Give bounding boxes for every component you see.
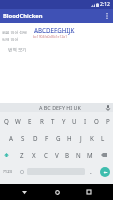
button[interactable]: Home — [41, 184, 73, 200]
staticText: 2:12 — [100, 1, 110, 8]
button[interactable]: S — [17, 129, 29, 146]
button[interactable]: Recents — [73, 184, 105, 200]
button[interactable]: R — [36, 112, 47, 129]
staticText: G — [56, 134, 61, 142]
staticText: N — [76, 151, 81, 159]
staticText: B — [65, 151, 70, 159]
button[interactable]: M — [84, 146, 95, 163]
staticText: I — [84, 117, 87, 125]
button[interactable]: Space — [27, 163, 85, 180]
button[interactable]: Voice input — [102, 103, 113, 112]
staticText: A — [9, 134, 13, 142]
button[interactable]: Emoji — [16, 163, 27, 180]
button[interactable]: T — [47, 112, 58, 129]
staticText: R — [40, 117, 44, 125]
staticText: Y — [62, 117, 66, 125]
staticText: ABCDEFGHIJK — [34, 26, 75, 34]
button[interactable]: W — [12, 112, 24, 129]
staticText: ?123 — [3, 169, 13, 175]
button[interactable]: D — [29, 129, 41, 146]
button[interactable]: Y — [58, 112, 69, 129]
staticText: D — [33, 134, 38, 142]
button[interactable]: E — [24, 112, 36, 129]
button[interactable]: B — [62, 146, 73, 163]
staticText: BloodChicken — [3, 12, 43, 20]
staticText: bc1904fa0d3b1e12a1 — [33, 34, 68, 39]
button[interactable]: V — [51, 146, 62, 163]
staticText: U — [72, 117, 77, 125]
staticText: V — [55, 151, 59, 159]
staticText: O — [94, 117, 99, 125]
button[interactable]: Enter — [96, 163, 113, 180]
button[interactable]: More options — [100, 9, 113, 23]
button[interactable]: P — [102, 112, 113, 129]
staticText: W — [15, 117, 21, 125]
button[interactable]: Shift — [0, 146, 16, 163]
button[interactable]: Q — [0, 112, 12, 129]
button[interactable]: Z — [16, 146, 28, 163]
staticText: H — [67, 134, 72, 142]
button[interactable]: U — [69, 112, 80, 129]
staticText: L — [101, 134, 105, 142]
button[interactable]: J — [75, 129, 86, 146]
button[interactable]: Backspace — [95, 146, 113, 163]
button[interactable]: X — [28, 146, 40, 163]
button[interactable]: N — [73, 146, 84, 163]
staticText: E — [28, 117, 32, 125]
staticText: A BC DEFY HI UK — [39, 104, 81, 111]
button[interactable]: L — [97, 129, 108, 146]
button[interactable]: K — [86, 129, 97, 146]
button[interactable]: G — [53, 129, 64, 146]
staticText: Z — [20, 151, 24, 159]
button[interactable]: Back — [8, 184, 41, 200]
staticText: T — [51, 117, 55, 125]
staticText: M — [87, 151, 93, 159]
staticText: J — [80, 134, 82, 142]
button[interactable]: O — [91, 112, 102, 129]
staticText: F — [45, 134, 49, 142]
staticText: S — [21, 134, 25, 142]
staticText: X — [32, 151, 36, 159]
staticText: . — [90, 167, 92, 176]
staticText: 번역 보기 — [8, 46, 27, 52]
button[interactable]: ?123 — [0, 163, 16, 180]
button[interactable]: I — [80, 112, 91, 129]
staticText: Q — [4, 117, 9, 125]
button[interactable]: H — [64, 129, 75, 146]
staticText: 원본 언어 선택 — [2, 30, 27, 35]
button[interactable]: C — [40, 146, 51, 163]
staticText: K — [90, 134, 94, 142]
button[interactable]: . — [85, 163, 96, 180]
button[interactable]: F — [41, 129, 53, 146]
staticText: P — [106, 117, 110, 125]
staticText: 번역 언어 — [2, 37, 19, 42]
staticText: C — [44, 151, 48, 159]
button[interactable]: A — [5, 129, 17, 146]
